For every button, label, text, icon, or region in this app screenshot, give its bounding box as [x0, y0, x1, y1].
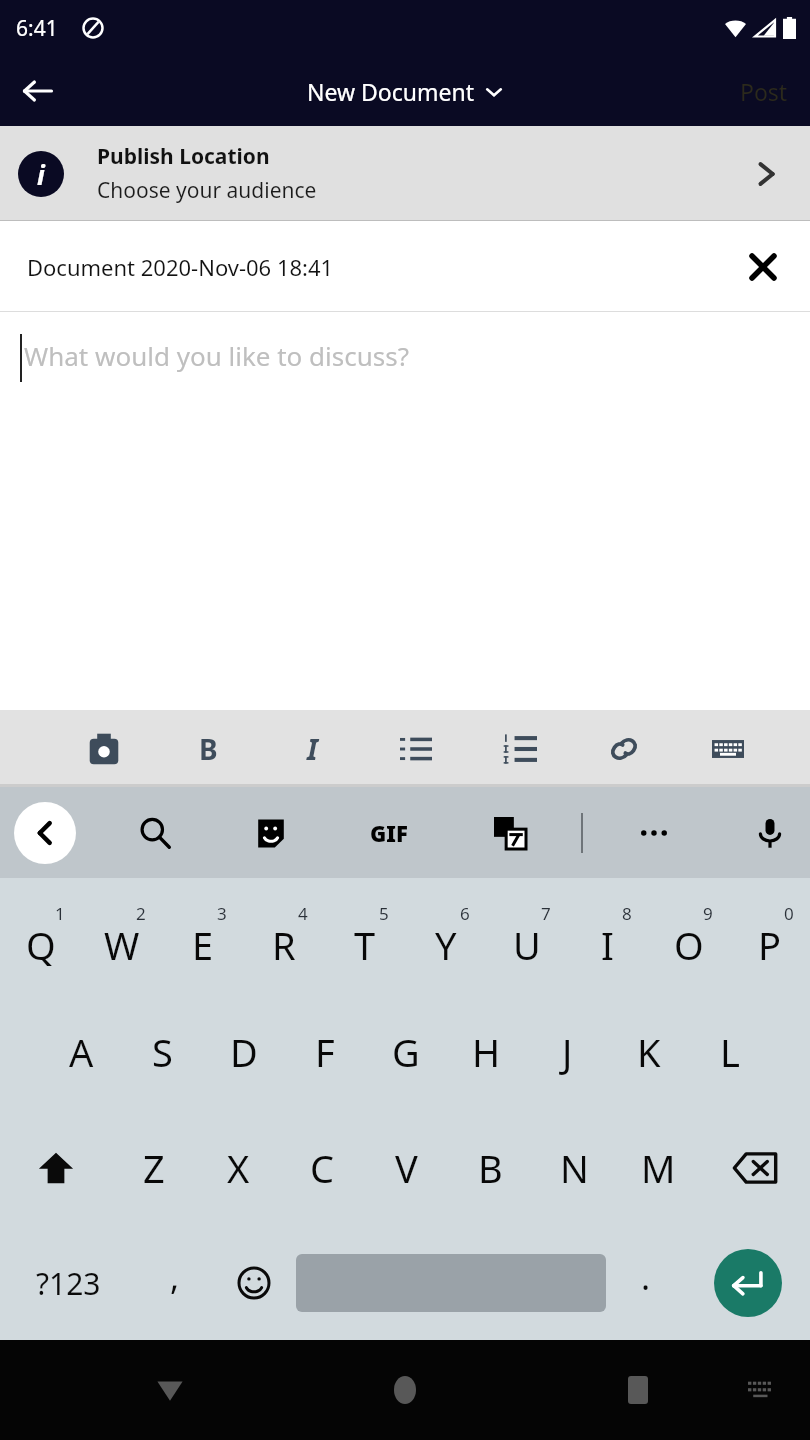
button[interactable]: Voice input	[742, 805, 798, 861]
staticText: I	[601, 919, 614, 971]
staticText: O	[674, 919, 704, 971]
staticText: U	[513, 919, 541, 971]
button[interactable]: Enter	[686, 1226, 810, 1340]
button[interactable]: K	[608, 994, 689, 1110]
button[interactable]: Bold	[178, 719, 238, 779]
button[interactable]: N	[532, 1110, 616, 1226]
button[interactable]: R	[243, 878, 324, 994]
button[interactable]: Recent apps	[608, 1360, 668, 1420]
staticText: X	[227, 1142, 250, 1194]
staticText: What would you like to discuss?	[24, 338, 409, 373]
staticText: P	[758, 919, 781, 971]
button[interactable]: Y	[405, 878, 486, 994]
staticText: F	[315, 1026, 335, 1078]
staticText: R	[272, 919, 296, 971]
staticText: E	[192, 919, 214, 971]
button[interactable]: T	[324, 878, 405, 994]
staticText: G	[392, 1026, 420, 1078]
button[interactable]: Close suggestions	[14, 802, 76, 864]
button[interactable]: P	[729, 878, 810, 994]
staticText: A	[69, 1026, 94, 1078]
button[interactable]: D	[203, 994, 284, 1110]
staticText: W	[104, 919, 140, 971]
button[interactable]: W	[81, 878, 162, 994]
button[interactable]: X	[196, 1110, 280, 1226]
staticText: 2	[136, 902, 146, 925]
staticText: Q	[26, 919, 56, 971]
button[interactable]: V	[364, 1110, 448, 1226]
staticText: S	[152, 1026, 173, 1078]
button[interactable]: Bulleted list	[386, 719, 446, 779]
button[interactable]: A	[40, 994, 122, 1110]
staticText: Z	[143, 1142, 165, 1194]
button[interactable]: I	[567, 878, 648, 994]
staticText: 9	[703, 902, 713, 925]
button[interactable]: H	[446, 994, 527, 1110]
button[interactable]: Italic	[282, 719, 342, 779]
button[interactable]: New Document	[307, 76, 503, 107]
button[interactable]: Numbered list	[490, 719, 550, 779]
button[interactable]: More options	[626, 805, 682, 861]
staticText: N	[560, 1142, 589, 1194]
button[interactable]: Keyboard	[698, 719, 758, 779]
staticText: Document 2020-Nov-06 18:41	[27, 252, 334, 282]
staticText: 4	[298, 902, 308, 925]
staticText: ?123	[36, 1263, 101, 1304]
button[interactable]: Post	[718, 64, 810, 119]
button[interactable]: What would you like to discuss?	[0, 312, 810, 710]
button[interactable]: Insert photo	[74, 719, 134, 779]
staticText: Post	[740, 76, 788, 107]
staticText: I	[307, 730, 318, 768]
staticText: D	[230, 1026, 258, 1078]
button[interactable]: Document 2020-Nov-06 18:41	[0, 221, 810, 312]
button[interactable]: Clear title	[746, 250, 780, 284]
staticText: 1	[55, 902, 65, 925]
staticText: J	[562, 1026, 573, 1078]
button[interactable]: O	[648, 878, 729, 994]
button[interactable]: Q	[0, 878, 81, 994]
staticText: i	[37, 157, 45, 192]
button[interactable]: U	[486, 878, 567, 994]
staticText: T	[354, 919, 376, 971]
button[interactable]: C	[280, 1110, 364, 1226]
button[interactable]: Insert link	[594, 719, 654, 779]
button[interactable]: Back	[8, 61, 68, 121]
staticText: K	[637, 1026, 661, 1078]
staticText: 6:41	[16, 14, 58, 43]
button[interactable]: E	[162, 878, 243, 994]
staticText: New Document	[307, 76, 475, 107]
staticText: 0	[784, 902, 794, 925]
staticText: L	[720, 1026, 740, 1078]
button[interactable]: G	[365, 994, 446, 1110]
button[interactable]: B	[448, 1110, 532, 1226]
staticText: 6	[460, 902, 470, 925]
button[interactable]: Back	[140, 1360, 200, 1420]
staticText: .	[641, 1254, 651, 1300]
button[interactable]: GIF	[361, 805, 417, 861]
button[interactable]: i	[0, 126, 810, 221]
button[interactable]: F	[284, 994, 365, 1110]
button[interactable]: S	[122, 994, 203, 1110]
staticText: M	[641, 1142, 676, 1194]
button[interactable]: Backspace	[700, 1110, 810, 1226]
staticText: 3	[217, 902, 227, 925]
button[interactable]: Search	[127, 805, 183, 861]
button[interactable]: Z	[111, 1110, 196, 1226]
staticText: 7	[541, 902, 551, 925]
button[interactable]: M	[616, 1110, 700, 1226]
button[interactable]: Stickers	[243, 805, 299, 861]
button[interactable]: Translate	[482, 805, 538, 861]
button[interactable]: ,	[137, 1226, 212, 1340]
button[interactable]: L	[689, 994, 770, 1110]
staticText: B	[199, 730, 218, 768]
staticText: V	[395, 1142, 418, 1194]
button[interactable]: Shift	[0, 1110, 111, 1226]
staticText: Y	[435, 919, 457, 971]
button[interactable]: Switch keyboard	[736, 1365, 786, 1415]
button[interactable]: J	[527, 994, 608, 1110]
button[interactable]: .	[606, 1226, 686, 1340]
button[interactable]: Home	[375, 1360, 435, 1420]
button[interactable]: Emoji	[212, 1226, 296, 1340]
button[interactable]: ?123	[0, 1226, 137, 1340]
